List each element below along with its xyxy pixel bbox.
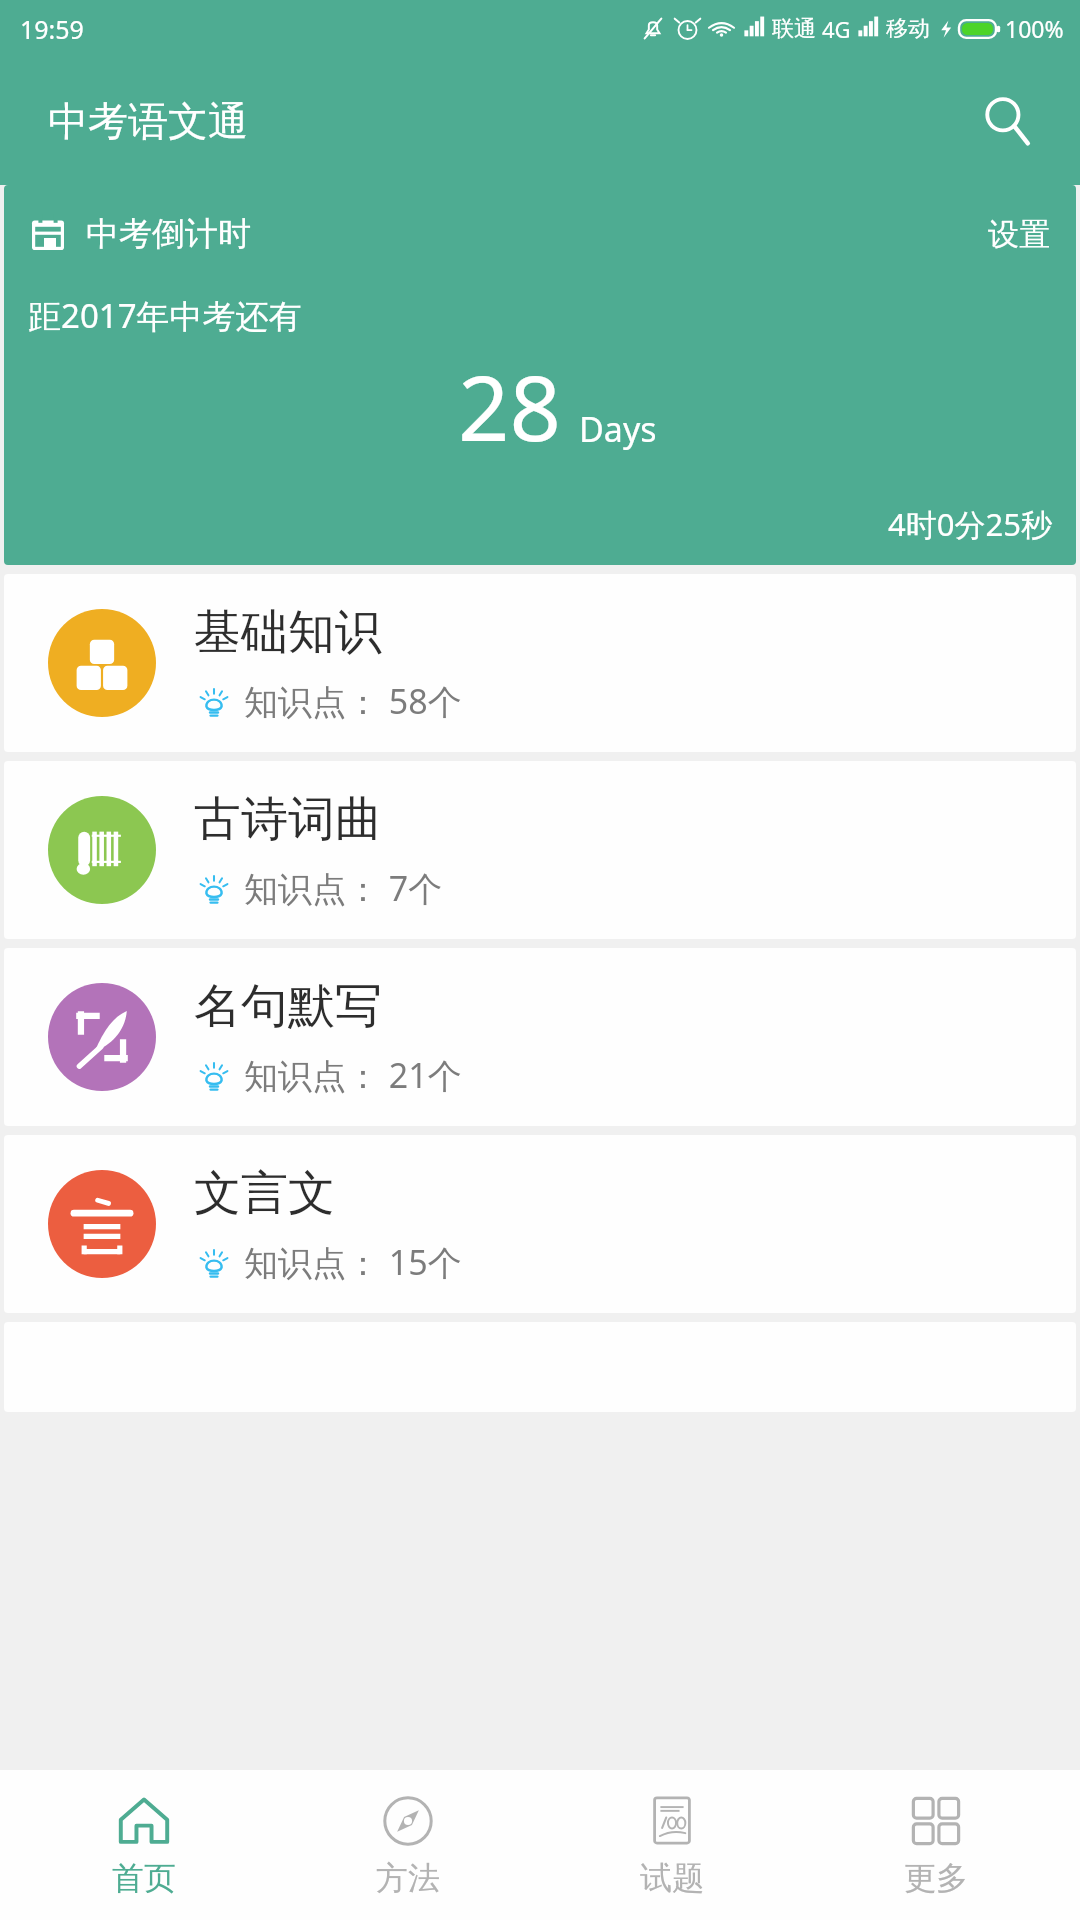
staticText: 名句默写 — [194, 977, 382, 1036]
staticText: 知识点： 15个 — [244, 1239, 462, 1285]
staticText: 联通 — [772, 15, 816, 43]
staticText: 方法 — [376, 1858, 440, 1898]
button[interactable]: 古诗词曲 — [4, 761, 1076, 939]
staticText: 移动 — [886, 15, 930, 43]
staticText: 4G — [822, 14, 851, 44]
staticText: 首页 — [112, 1858, 176, 1898]
button[interactable]: 方法 — [288, 1770, 528, 1920]
staticText: Days — [579, 406, 657, 452]
staticText: 中考倒计时 — [86, 213, 251, 255]
button[interactable]: 设置 — [988, 215, 1050, 254]
staticText: 知识点： 21个 — [244, 1052, 462, 1098]
staticText: 距2017年中考还有 — [28, 293, 302, 338]
button[interactable]: 名句默写 — [4, 948, 1076, 1126]
staticText: 100% — [1005, 13, 1064, 44]
staticText: 知识点： 7个 — [244, 865, 443, 911]
staticText: 文言文 — [194, 1164, 335, 1223]
staticText: 19:59 — [20, 12, 84, 46]
button[interactable]: 文言文 — [4, 1135, 1076, 1313]
staticText: 28 — [458, 345, 561, 468]
staticText: 知识点： 58个 — [244, 678, 462, 724]
button[interactable]: 中考倒计时 — [4, 185, 1076, 565]
button[interactable]: 更多 — [816, 1770, 1056, 1920]
staticText: 更多 — [904, 1858, 968, 1898]
staticText: 试题 — [640, 1858, 704, 1898]
staticText: 古诗词曲 — [194, 790, 382, 849]
button[interactable]: 基础知识 — [4, 574, 1076, 752]
button[interactable]: 首页 — [24, 1770, 264, 1920]
button[interactable]: Search — [966, 81, 1046, 161]
staticText: 4时0分25秒 — [888, 503, 1052, 545]
button[interactable]: 试题 — [552, 1770, 792, 1920]
staticText: 中考语文通 — [48, 96, 248, 146]
staticText: 基础知识 — [194, 603, 382, 662]
staticText: 设置 — [988, 215, 1050, 254]
